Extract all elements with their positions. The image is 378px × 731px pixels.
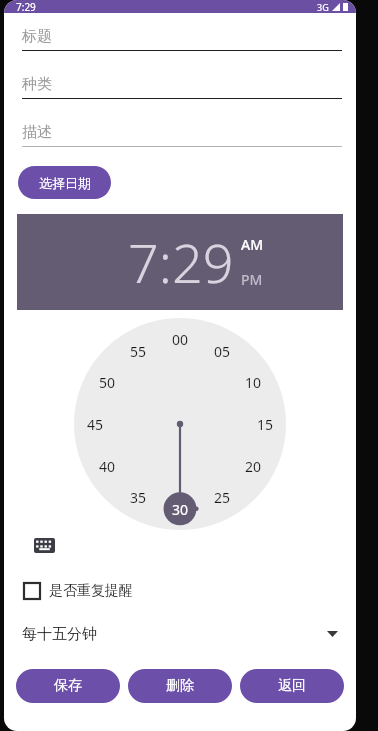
button[interactable]: 35 [130,488,147,507]
staticText: 选择日期 [39,175,91,191]
staticText: 3G [317,1,329,13]
button[interactable]: PM [241,270,263,289]
button[interactable]: 25 [214,488,231,507]
button[interactable]: 保存 [16,669,120,703]
button[interactable]: 每十五分钟 [22,621,338,647]
button[interactable]: 删除 [128,669,232,703]
button[interactable]: 15 [257,415,274,434]
button[interactable]: 05 [214,342,231,361]
button[interactable]: 7:29 [128,225,234,299]
button[interactable]: 描述 [22,122,342,143]
button[interactable]: 20 [245,457,262,476]
button[interactable]: 40 [99,457,116,476]
button[interactable]: 55 [130,342,147,361]
staticText: 删除 [166,677,194,695]
button[interactable]: AM [241,235,264,254]
button[interactable]: 50 [99,373,116,392]
staticText: 返回 [278,677,306,695]
button[interactable]: 10 [245,373,262,392]
button[interactable]: 标题 [22,26,342,47]
button[interactable]: 选择日期 [18,166,111,199]
staticText: 种类 [22,75,52,94]
staticText: 7:29 [16,0,36,13]
button[interactable]: 00 [172,330,189,349]
button[interactable]: 返回 [240,669,344,703]
button[interactable]: 45 [87,415,104,434]
button[interactable]: Switch to keyboard input [34,538,55,553]
staticText: 是否重复提醒 [49,582,133,600]
staticText: 标题 [22,27,52,46]
button[interactable]: 30 [172,500,189,519]
staticText: 描述 [22,123,52,142]
button[interactable]: 是否重复提醒 [24,582,133,600]
staticText: 保存 [54,677,82,695]
button[interactable]: 种类 [22,74,342,95]
staticText: 每十五分钟 [22,625,97,644]
